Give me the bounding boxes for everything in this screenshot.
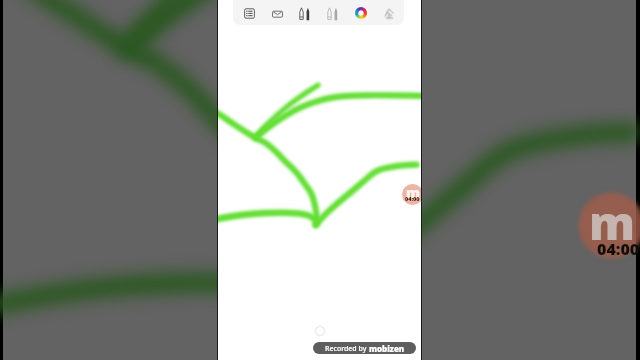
button[interactable]: Brush [319,1,347,25]
staticText: m [406,183,420,202]
staticText: mobizen [369,343,405,354]
button[interactable]: Colour [347,1,375,25]
staticText: 04:00 [597,238,640,260]
button[interactable]: Background [263,1,291,25]
staticText: Recorded by [325,344,369,354]
staticText: m [589,191,635,254]
button[interactable]: Pen [291,1,319,25]
button[interactable]: More tools [375,1,403,25]
staticText: 04:00 [405,195,420,202]
button[interactable]: Templates [235,1,263,25]
